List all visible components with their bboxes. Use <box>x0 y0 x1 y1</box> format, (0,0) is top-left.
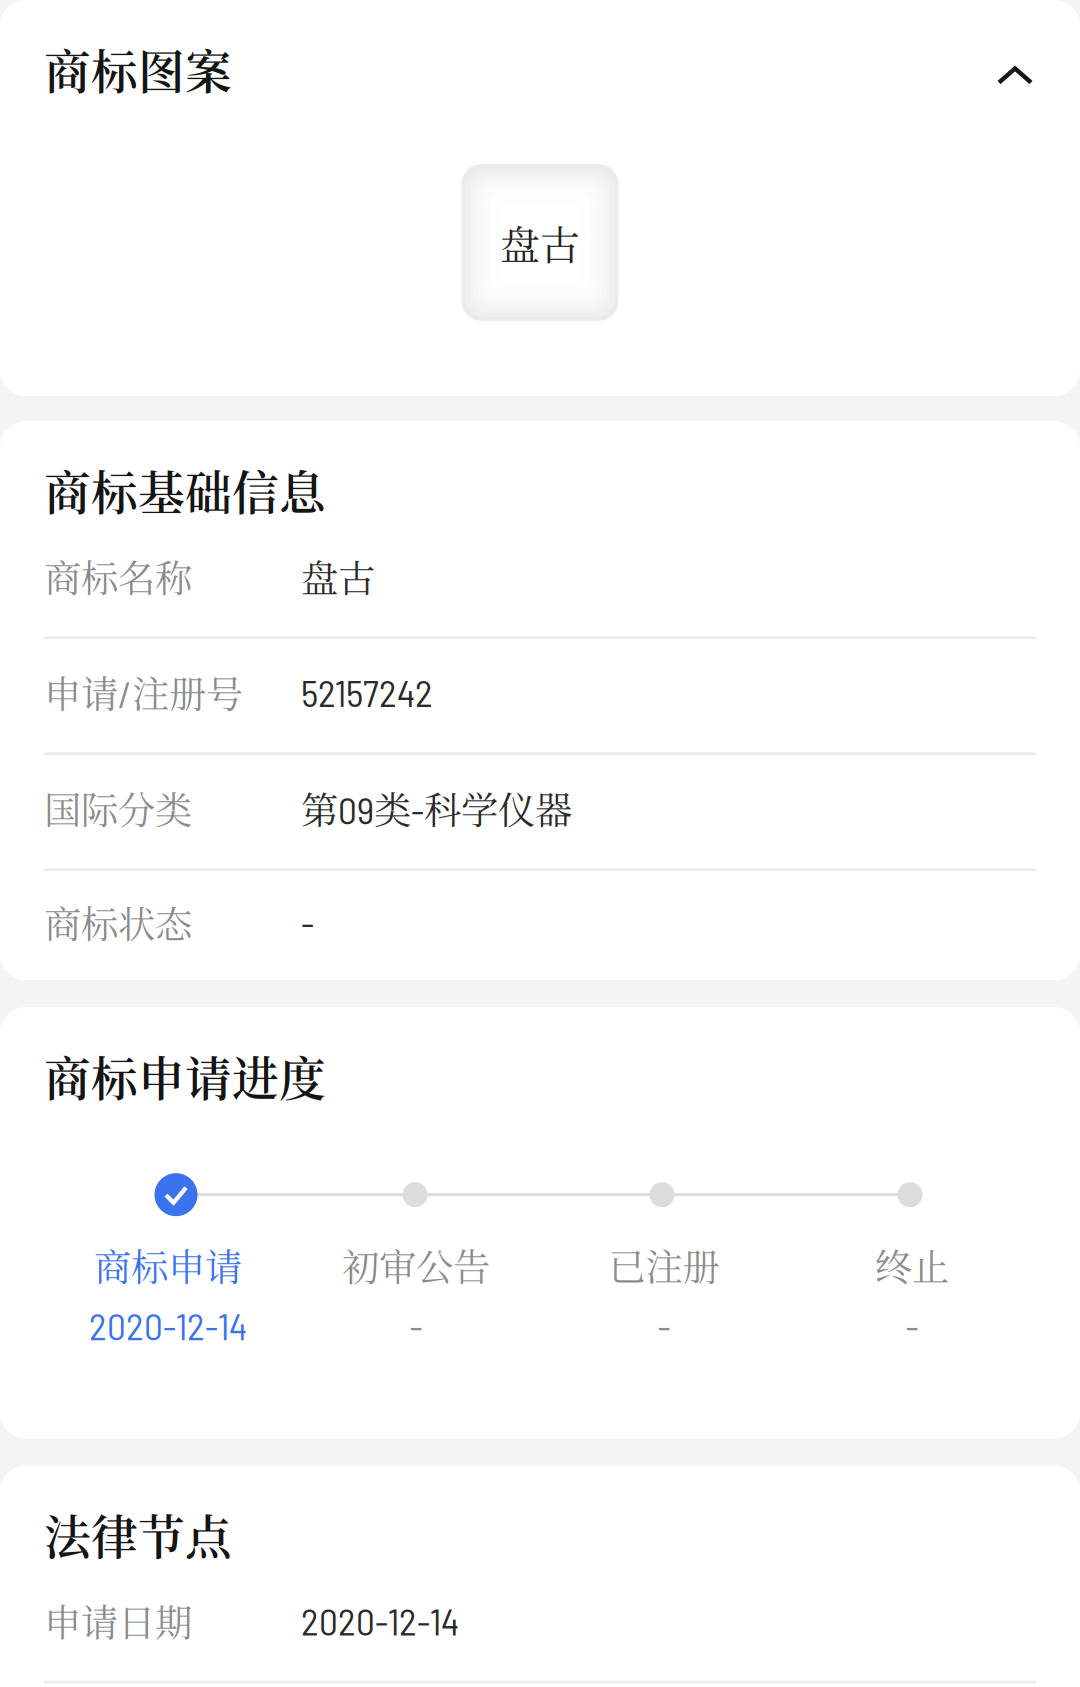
staticText: 商标名称 <box>44 549 192 603</box>
button[interactable]: 申请日期 <box>0 1568 1080 1681</box>
staticText: 2020-12-14 <box>301 1598 459 1643</box>
staticText: - <box>905 1303 918 1348</box>
staticText: 国际分类 <box>44 781 192 835</box>
staticText: 已注册 <box>608 1238 719 1292</box>
staticText: 法律节点 <box>44 1501 232 1568</box>
staticText: 2020-12-14 <box>89 1303 247 1348</box>
staticText: - <box>301 900 314 944</box>
button[interactable]: 商标状态 <box>0 871 1080 980</box>
staticText: 申请/注册号 <box>44 665 243 719</box>
button[interactable]: 商标名称 <box>0 523 1080 636</box>
staticText: 申请日期 <box>44 1594 192 1647</box>
staticText: 初审公告 <box>342 1238 490 1292</box>
staticText: 商标申请进度 <box>44 1042 326 1109</box>
button[interactable]: 国际分类 <box>0 755 1080 868</box>
staticText: 第09类-科学仪器 <box>301 781 572 835</box>
staticText: - <box>657 1303 670 1348</box>
staticText: 商标基础信息 <box>44 456 326 523</box>
button[interactable]: 申请/注册号 <box>0 639 1080 752</box>
staticText: 盘古 <box>500 214 580 271</box>
staticText: - <box>409 1303 422 1348</box>
staticText: 盘古 <box>301 549 375 603</box>
button[interactable]: 收起 <box>975 0 1080 102</box>
staticText: 商标申请 <box>94 1238 242 1292</box>
staticText: 52157242 <box>301 670 433 714</box>
staticText: 商标状态 <box>44 895 192 949</box>
staticText: 终止 <box>875 1238 949 1292</box>
staticText: 商标图案 <box>44 35 232 102</box>
